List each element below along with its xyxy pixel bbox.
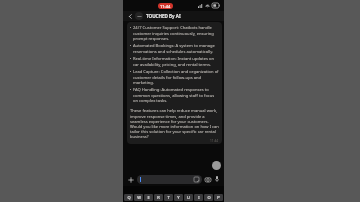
button[interactable]: Attach [126,175,135,184]
staticText: Real-time Information: Instant updates o… [133,56,219,67]
button[interactable]: R [154,194,163,201]
staticText: These features can help reduce manual wo… [130,108,219,139]
staticText: R [157,195,160,200]
staticText: U [187,195,190,200]
staticText: P [217,195,220,200]
button[interactable]: Profile [212,161,221,170]
button[interactable]: Y [174,194,183,201]
staticText: TOUCHED By AI [146,13,181,19]
button[interactable]: T [164,194,173,201]
staticText: T [167,195,170,200]
staticText: 11:44 [160,4,171,9]
button[interactable]: TOUCHED By AI [135,11,221,21]
staticText: I [198,195,200,200]
button[interactable]: 24/7 Customer Support: Chatbots handle c… [127,22,222,144]
button[interactable]: Q [124,194,133,201]
button[interactable]: P [214,194,223,201]
button[interactable]: U [184,194,193,201]
button[interactable]: Back [126,12,134,20]
button[interactable]: O [204,194,213,201]
button[interactable]: Sticker [194,177,199,182]
staticText: Q [127,195,131,200]
button[interactable]: Camera [204,175,212,183]
staticText: Y [177,195,180,200]
staticText: W [137,195,141,200]
button[interactable]: W [134,194,143,201]
staticText: 24/7 Customer Support: Chatbots handle c… [133,25,219,41]
button[interactable]: Sticker [137,175,202,184]
staticText: O [207,195,211,200]
button[interactable]: I [194,194,203,201]
staticText: FAQ Handling: Automated responses to com… [133,87,219,103]
staticText: E [147,195,150,200]
staticText: Automated Bookings: A system to manage r… [133,43,219,54]
button[interactable]: E [144,194,153,201]
staticText: 11:44 [210,139,219,143]
button[interactable]: Voice message [213,175,221,183]
staticText: Lead Capture: Collection and organizatio… [133,69,219,85]
